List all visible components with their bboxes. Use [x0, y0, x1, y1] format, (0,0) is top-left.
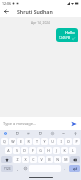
- staticText: M: [64, 157, 68, 162]
- staticText: Apr 14, 2024: [31, 21, 50, 25]
- staticText: Hello: [65, 30, 75, 35]
- staticText: N: [56, 157, 59, 162]
- button[interactable]: R: [25, 138, 32, 145]
- button[interactable]: Shift: [1, 156, 12, 163]
- staticText: Shruti Sudhan: [17, 8, 53, 15]
- button[interactable]: J: [53, 147, 60, 154]
- staticText: U: [51, 139, 54, 144]
- staticText: I: [60, 139, 62, 144]
- button[interactable]: C: [30, 156, 37, 163]
- staticText: R: [27, 139, 30, 144]
- button[interactable]: D: [21, 147, 28, 154]
- staticText: Q: [3, 139, 6, 144]
- button[interactable]: Enter: [69, 165, 80, 172]
- button[interactable]: Send: [69, 119, 78, 128]
- button[interactable]: M: [62, 156, 69, 163]
- button[interactable]: V: [38, 156, 45, 163]
- staticText: P: [75, 139, 78, 144]
- staticText: Type a message...: [3, 121, 37, 126]
- button[interactable]: Type a message...: [3, 121, 69, 126]
- button[interactable]: ?123: [1, 165, 13, 172]
- button[interactable]: O: [65, 138, 72, 145]
- button[interactable]: W: [9, 138, 16, 145]
- staticText: D: [23, 148, 26, 153]
- button[interactable]: B: [46, 156, 53, 163]
- button[interactable]: A: [5, 147, 12, 154]
- button[interactable]: I: [57, 138, 64, 145]
- staticText: S: [16, 148, 18, 153]
- staticText: W: [11, 139, 15, 144]
- button[interactable]: Translate: [61, 131, 66, 136]
- staticText: H: [47, 148, 50, 153]
- button[interactable]: Back: [2, 7, 11, 16]
- button[interactable]: Hello: [56, 28, 78, 42]
- staticText: L: [72, 148, 74, 153]
- button[interactable]: U: [49, 138, 56, 145]
- staticText: ,: [17, 166, 19, 171]
- button[interactable]: Emoji: [50, 131, 55, 136]
- button[interactable]: P: [73, 138, 80, 145]
- staticText: 12:06: [2, 1, 11, 6]
- button[interactable]: N: [54, 156, 61, 163]
- staticText: B: [48, 157, 51, 162]
- staticText: .: [64, 166, 66, 171]
- staticText: ?123: [4, 167, 11, 171]
- button[interactable]: .: [62, 165, 68, 172]
- button[interactable]: Z: [13, 156, 21, 163]
- button[interactable]: L: [69, 147, 76, 154]
- staticText: V: [40, 157, 43, 162]
- staticText: J: [56, 148, 57, 153]
- button[interactable]: S: [13, 147, 20, 154]
- staticText: E: [20, 139, 22, 144]
- staticText: X: [24, 157, 27, 162]
- button[interactable]: Settings: [73, 131, 78, 136]
- staticText: Y: [43, 139, 46, 144]
- button[interactable]: Y: [41, 138, 48, 145]
- button[interactable]: Backspace: [70, 156, 80, 163]
- button[interactable]: E: [17, 138, 24, 145]
- button[interactable]: Stickers: [26, 131, 31, 136]
- button[interactable]: GIF: [15, 131, 20, 136]
- button[interactable]: ,: [14, 165, 21, 172]
- button[interactable]: F: [29, 147, 36, 154]
- button[interactable]: Emoji: [22, 165, 28, 172]
- staticText: K: [63, 148, 66, 153]
- button[interactable]: K: [61, 147, 68, 154]
- staticText: G: [39, 148, 42, 153]
- staticText: A: [7, 148, 10, 153]
- button[interactable]: G: [37, 147, 44, 154]
- button[interactable]: Clipboard: [38, 131, 43, 136]
- button[interactable]: X: [22, 156, 29, 163]
- button[interactable]: Google Assistant: [3, 131, 8, 136]
- staticText: Z: [16, 157, 19, 162]
- button[interactable]: Q: [1, 138, 8, 145]
- staticText: O: [67, 139, 70, 144]
- button[interactable]: T: [33, 138, 40, 145]
- staticText: C: [32, 157, 35, 162]
- staticText: F: [32, 148, 34, 153]
- staticText: T: [36, 139, 38, 144]
- button[interactable]: H: [45, 147, 52, 154]
- staticText: 12:05 PM: [59, 36, 71, 40]
